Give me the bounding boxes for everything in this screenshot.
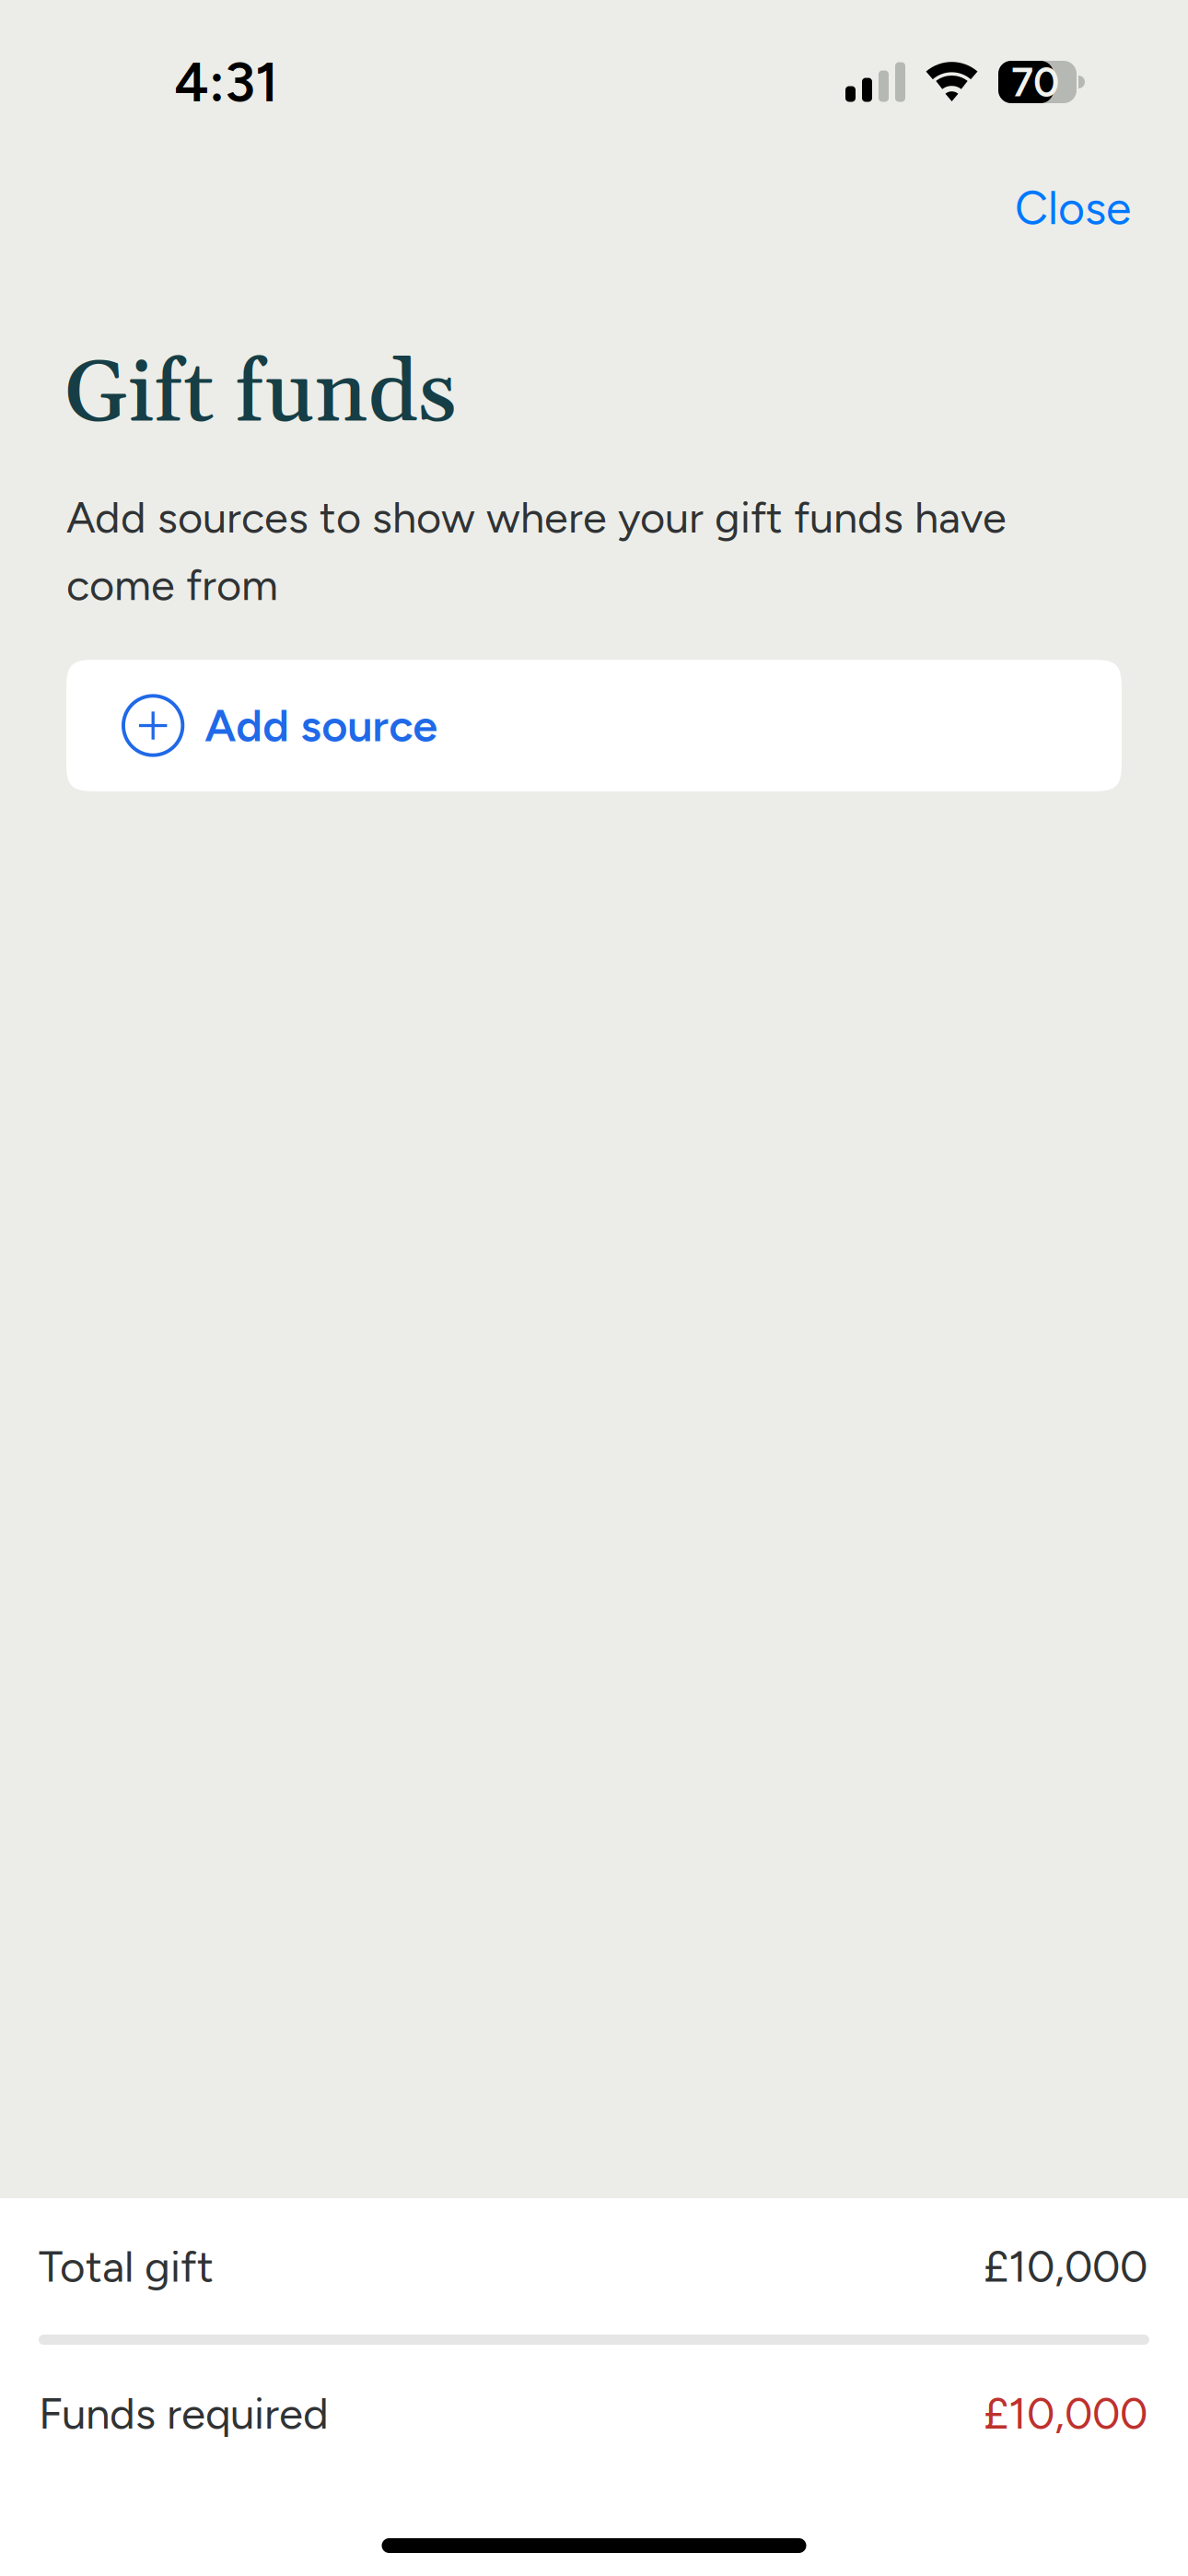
staticText: £10,000 — [984, 2387, 1147, 2440]
staticText: 4:31 — [174, 49, 278, 115]
staticText: Total gift — [39, 2240, 214, 2293]
staticText: 70 — [1011, 58, 1059, 106]
button[interactable]: Add source — [66, 660, 1122, 791]
staticText: Gift funds — [64, 341, 457, 450]
staticText: £10,000 — [984, 2240, 1147, 2293]
staticText: Add source — [205, 699, 438, 752]
staticText: Close — [1015, 181, 1131, 236]
staticText: Funds required — [39, 2387, 329, 2440]
staticText: Add sources to show where your gift fund… — [66, 491, 1007, 611]
button[interactable]: Close — [996, 164, 1149, 252]
